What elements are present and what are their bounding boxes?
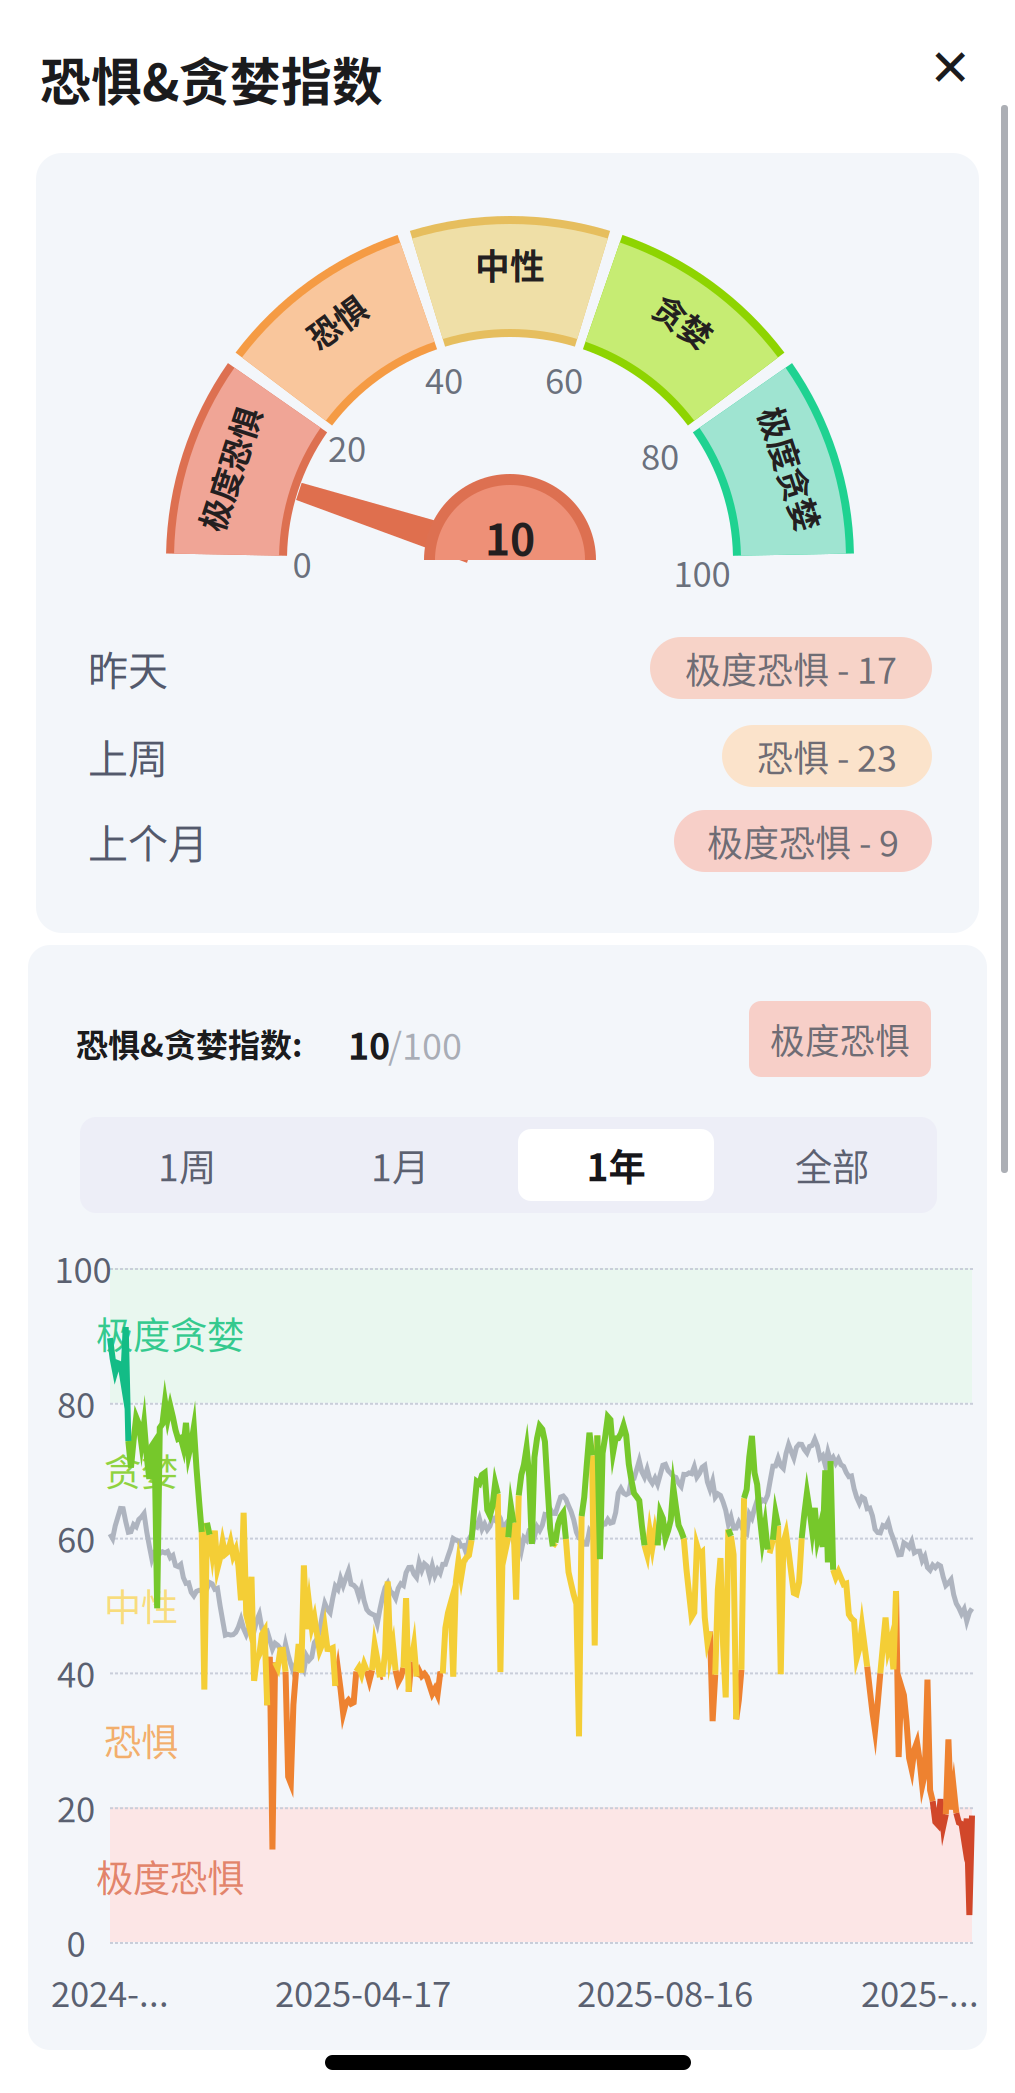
staticText: 0 [292,538,311,588]
staticText: 极度恐惧 [770,1014,910,1064]
staticText: 2024-... [51,1967,169,2017]
staticText: 贪婪 [104,1443,178,1497]
staticText: ✕ [929,38,971,97]
staticText: 极度恐惧 [165,445,293,492]
staticText: 恐惧&贪婪指数 [40,42,383,115]
staticText: 恐惧 [304,298,368,344]
staticText: 10 [348,1018,390,1070]
staticText: 贪婪 [652,298,716,344]
staticText: 2025-08-16 [577,1967,753,2017]
staticText: 中性 [104,1578,178,1632]
staticText: 60 [57,1512,95,1563]
staticText: 80 [641,430,679,480]
staticText: 极度恐惧 [96,1849,244,1903]
staticText: /100 [388,1018,462,1070]
staticText: 昨天 [88,639,168,697]
staticText: 10 [485,506,535,568]
staticText: 60 [545,354,583,404]
staticText: 恐惧&贪婪指数: [76,1020,302,1066]
staticText: 2025-04-17 [275,1967,451,2017]
staticText: 1年 [586,1138,645,1192]
staticText: 极度贪婪 [96,1306,244,1360]
staticText: 极度贪婪 [727,445,855,492]
staticText: 40 [57,1647,95,1697]
staticText: 0 [66,1917,85,1967]
button[interactable]: Close [923,41,977,95]
staticText: 上周 [88,727,168,785]
staticText: 恐惧 [104,1713,178,1767]
staticText: 极度恐惧 - 9 [707,815,899,867]
staticText: 20 [57,1782,95,1832]
staticText: 40 [425,354,463,404]
staticText: 恐惧 - 23 [757,730,897,782]
staticText: 20 [328,422,366,472]
staticText: 1周 [158,1138,216,1192]
staticText: 100 [673,547,730,597]
staticText: 中性 [475,239,545,289]
staticText: 极度恐惧 - 17 [685,642,897,694]
staticText: 2025-... [861,1967,979,2017]
staticText: 80 [57,1378,95,1428]
staticText: 全部 [795,1138,869,1192]
staticText: 上个月 [88,812,208,870]
staticText: 1月 [371,1138,429,1192]
staticText: 100 [54,1243,111,1293]
